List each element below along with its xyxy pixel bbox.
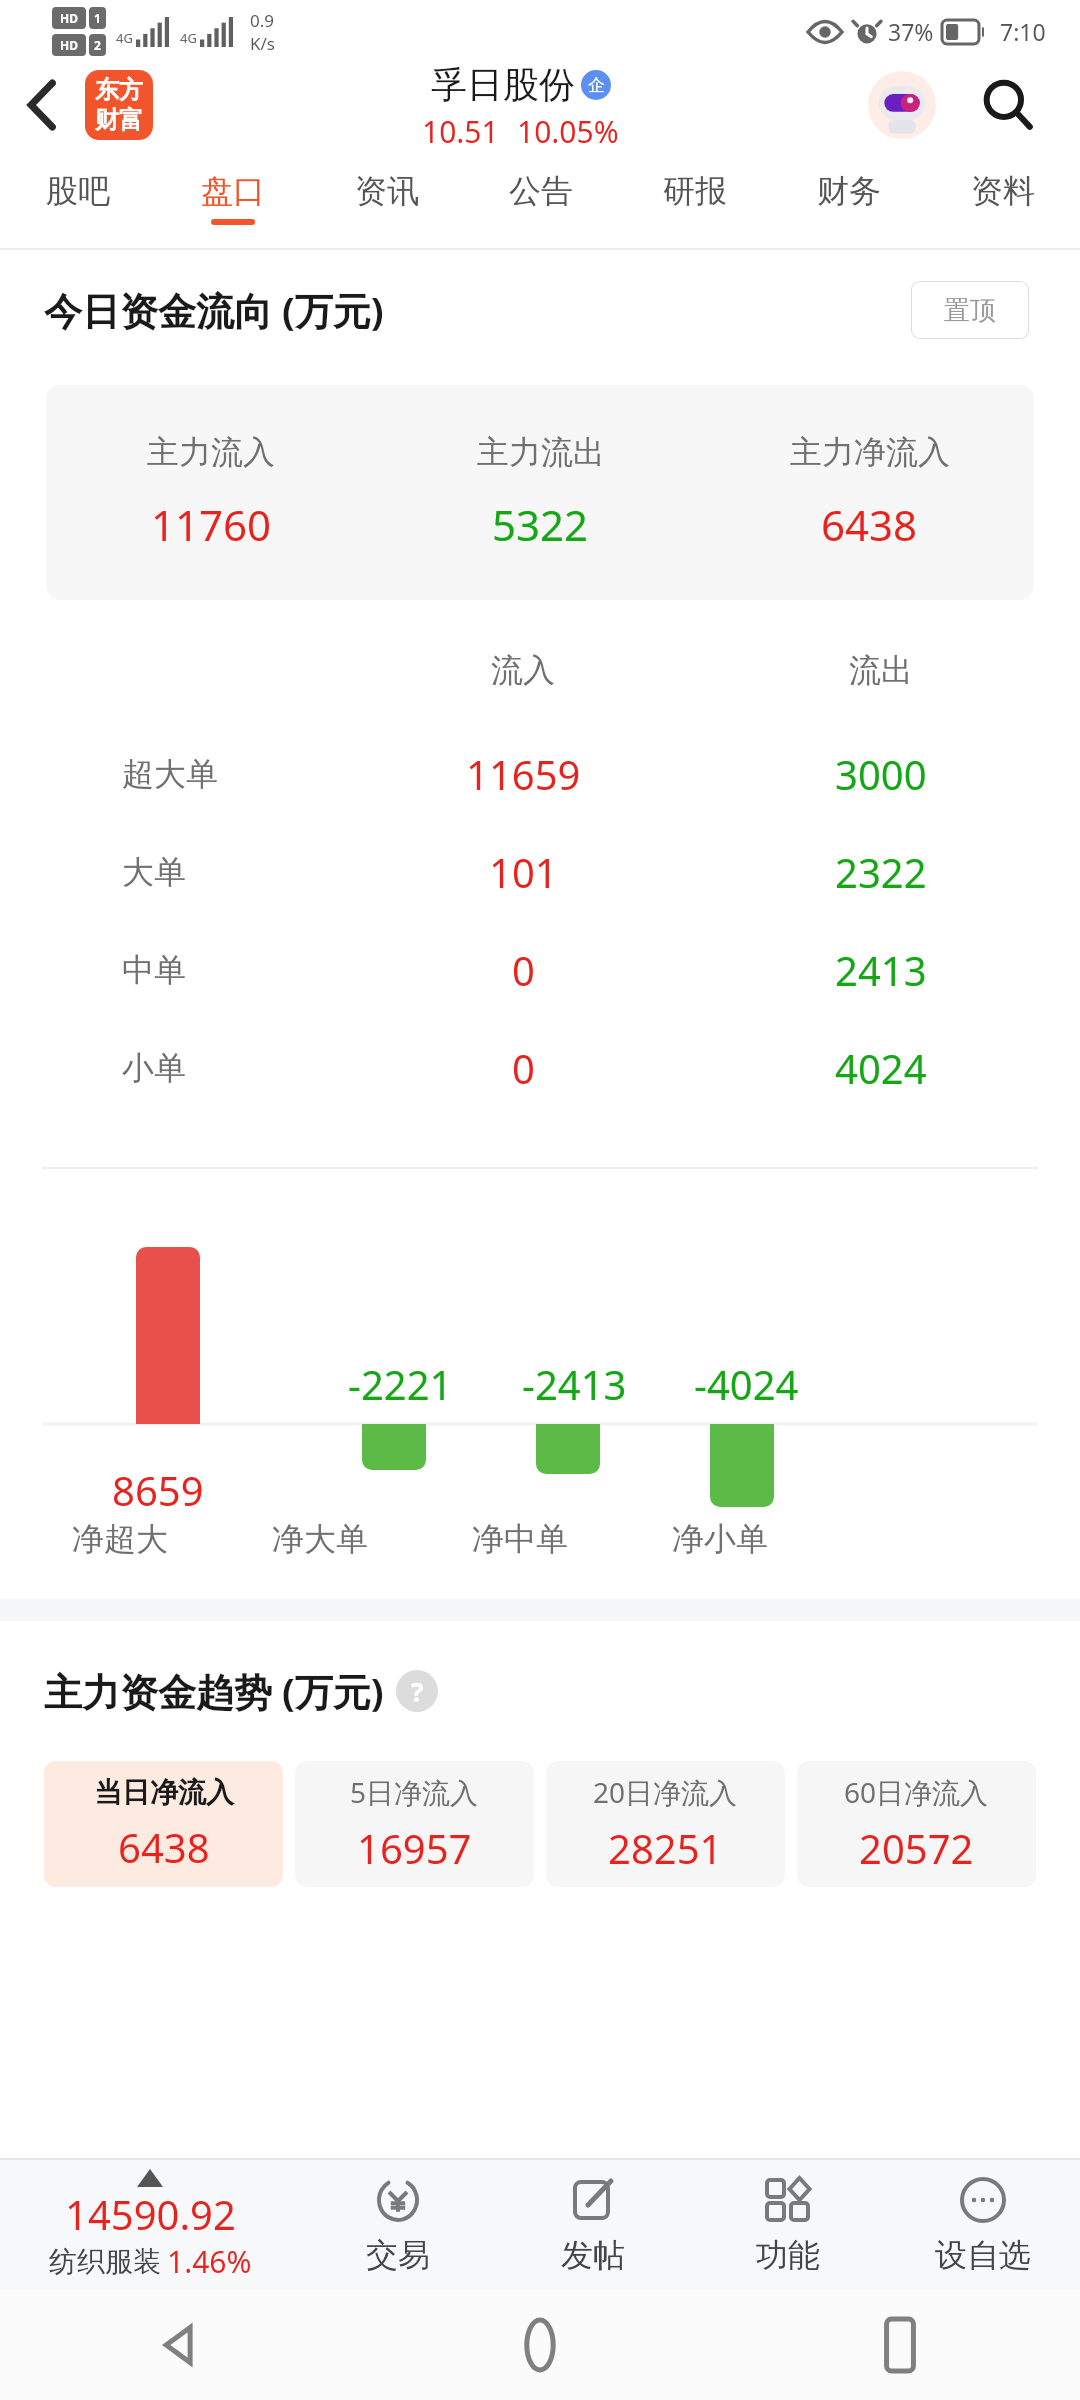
staticText: 6438 [118, 1820, 210, 1874]
button[interactable]: Help [396, 1670, 438, 1712]
staticText: 20日净流入 [593, 1773, 738, 1811]
staticText: ? [411, 1674, 424, 1709]
button[interactable]: 交易 [300, 2160, 495, 2290]
staticText: 10.05% [517, 111, 619, 148]
button[interactable]: 置顶 [911, 281, 1029, 339]
staticText: 28251 [608, 1821, 723, 1875]
staticText: 2322 [835, 845, 927, 899]
staticText: 东方 [95, 75, 143, 105]
staticText: 主力净流入 [790, 432, 950, 472]
staticText: 流入 [491, 650, 555, 690]
staticText: 37% [888, 16, 934, 47]
staticText: 盘口 [201, 171, 265, 211]
button[interactable]: 资讯 [310, 148, 464, 248]
button[interactable]: 研报 [618, 148, 772, 248]
staticText: K/s [250, 32, 275, 55]
staticText: 研报 [663, 171, 727, 211]
staticText: 置顶 [944, 294, 996, 327]
staticText: -2221 [348, 1357, 453, 1411]
staticText: 5日净流入 [350, 1773, 479, 1811]
staticText: 流出 [849, 650, 913, 690]
staticText: 2 [94, 37, 101, 53]
staticText: 3000 [835, 747, 927, 801]
staticText: 7:10 [1000, 16, 1046, 47]
staticText: 8659 [112, 1463, 204, 1517]
staticText: 企 [588, 75, 605, 96]
staticText: 中单 [122, 950, 186, 990]
button[interactable]: 盘口 [155, 148, 310, 248]
staticText: 1.46% [167, 2241, 252, 2282]
staticText: 6438 [821, 496, 918, 553]
staticText: 财务 [817, 171, 881, 211]
staticText: 60日净流入 [844, 1773, 989, 1811]
button[interactable]: 超大单 [0, 725, 1080, 823]
button[interactable]: 60日净流入 [797, 1761, 1036, 1887]
staticText: 5322 [492, 496, 589, 553]
staticText: 纺织服装 [49, 2244, 161, 2279]
button[interactable]: 功能 [690, 2160, 885, 2290]
button[interactable]: 财务 [772, 148, 926, 248]
staticText: 101 [489, 845, 558, 899]
staticText: 股吧 [46, 171, 110, 211]
button[interactable]: Back [0, 2290, 360, 2400]
staticText: HD [60, 10, 78, 26]
button[interactable]: 设自选 [885, 2160, 1080, 2290]
button[interactable]: Back [12, 75, 72, 135]
staticText: 净中单 [472, 1519, 568, 1559]
staticText: 公告 [509, 171, 573, 211]
staticText: 净超大 [72, 1519, 168, 1559]
button[interactable]: 股吧 [0, 148, 155, 248]
staticText: 今日资金流向 (万元) [44, 284, 384, 336]
button[interactable]: 14590.92 [0, 2160, 300, 2290]
button[interactable]: 20日净流入 [546, 1761, 785, 1887]
staticText: 净大单 [272, 1519, 368, 1559]
staticText: -4024 [694, 1357, 799, 1411]
staticText: 财富 [95, 105, 143, 135]
button[interactable]: Search [966, 63, 1050, 147]
staticText: 20572 [859, 1821, 974, 1875]
staticText: 1 [94, 10, 101, 26]
staticText: 0 [512, 1041, 535, 1095]
staticText: 11659 [466, 747, 581, 801]
button[interactable]: 发帖 [495, 2160, 690, 2290]
staticText: 交易 [366, 2235, 430, 2275]
staticText: 11760 [151, 496, 272, 553]
staticText: -2413 [522, 1357, 627, 1411]
staticText: 16957 [357, 1821, 472, 1875]
button[interactable]: Recents [720, 2290, 1080, 2400]
staticText: 4G [116, 29, 133, 47]
staticText: HD [60, 37, 78, 53]
staticText: 发帖 [561, 2235, 625, 2275]
staticText: 主力流入 [147, 432, 275, 472]
button[interactable]: 大单 [0, 823, 1080, 921]
staticText: 功能 [756, 2235, 820, 2275]
staticText: 资料 [971, 171, 1035, 211]
button[interactable]: 中单 [0, 921, 1080, 1019]
staticText: 10.51 [422, 111, 499, 148]
button[interactable]: 东方 [85, 70, 153, 140]
staticText: 主力资金趋势 (万元) [44, 1665, 384, 1717]
button[interactable]: Home [360, 2290, 720, 2400]
staticText: 4024 [835, 1041, 927, 1095]
button[interactable]: 小单 [0, 1019, 1080, 1117]
staticText: 孚日股份 [431, 62, 575, 107]
staticText: 当日净流入 [94, 1775, 234, 1810]
staticText: 设自选 [935, 2235, 1031, 2275]
staticText: 14590.92 [65, 2187, 236, 2241]
staticText: 超大单 [122, 754, 218, 794]
staticText: 大单 [122, 852, 186, 892]
button[interactable]: Assistant [864, 67, 940, 143]
staticText: 4G [180, 29, 197, 47]
button[interactable]: 当日净流入 [44, 1761, 283, 1887]
staticText: 0 [512, 943, 535, 997]
button[interactable]: 资料 [926, 148, 1080, 248]
button[interactable]: 5日净流入 [295, 1761, 534, 1887]
staticText: 0.9 [250, 9, 275, 32]
staticText: 2413 [835, 943, 927, 997]
button[interactable]: 公告 [464, 148, 618, 248]
staticText: 主力流出 [477, 432, 605, 472]
button[interactable]: 主力流入 [46, 385, 1034, 600]
staticText: 小单 [122, 1048, 186, 1088]
staticText: 资讯 [355, 171, 419, 211]
staticText: 净小单 [672, 1519, 768, 1559]
